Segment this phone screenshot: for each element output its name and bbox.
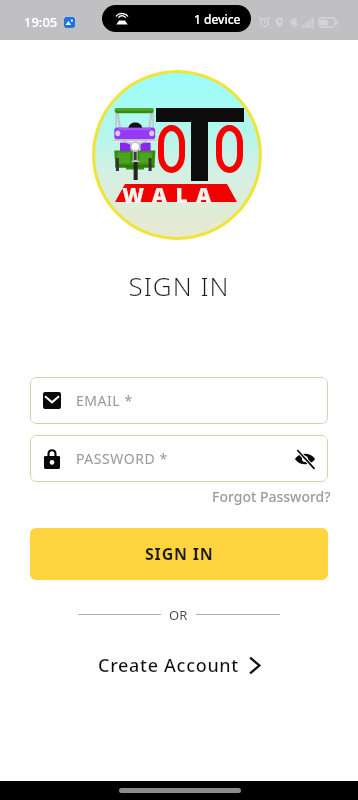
button[interactable]: Show password [293, 447, 317, 471]
staticText: Create Account [98, 653, 239, 678]
staticText: EMAIL * [76, 391, 317, 410]
staticText: 1 device [194, 11, 241, 27]
staticText: 19:05 [24, 13, 58, 31]
staticText: WALA [111, 181, 231, 210]
staticText: SIGN IN [145, 543, 214, 565]
button[interactable]: Create Account [90, 646, 268, 685]
button[interactable]: PASSWORD * [30, 435, 328, 482]
staticText: OR [169, 606, 188, 622]
staticText: SIGN IN [0, 268, 358, 303]
button[interactable]: Forgot Password? [210, 484, 333, 509]
button[interactable]: EMAIL * [30, 377, 328, 424]
staticText: Forgot Password? [212, 487, 331, 506]
button[interactable]: SIGN IN [30, 528, 328, 580]
staticText: PASSWORD * [76, 449, 293, 468]
